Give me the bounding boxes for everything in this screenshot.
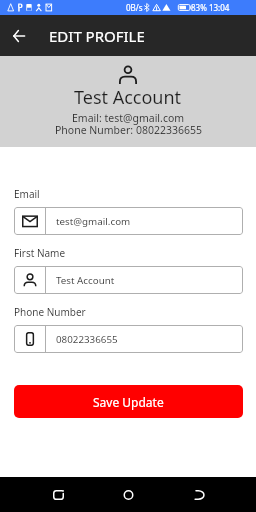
staticText: Save Update: [93, 394, 164, 410]
staticText: test@gmail.com: [56, 215, 131, 228]
staticText: 08022336655: [56, 333, 118, 346]
button[interactable]: Save Update: [14, 385, 243, 418]
button[interactable]: 08022336655: [14, 325, 243, 353]
button[interactable]: Recent apps: [35, 477, 81, 512]
button[interactable]: test@gmail.com: [14, 207, 243, 235]
staticText: Phone Number: [14, 305, 86, 319]
button[interactable]: Back: [8, 25, 29, 46]
staticText: 0B/s: [126, 2, 143, 13]
staticText: Test Account: [56, 274, 115, 287]
staticText: Test Account: [74, 85, 182, 110]
staticText: Phone Number: 08022336655: [55, 123, 202, 137]
button[interactable]: Test Account: [14, 266, 243, 294]
staticText: EDIT PROFILE: [49, 26, 145, 46]
staticText: 83% 13:04: [191, 2, 230, 13]
staticText: Email: [14, 187, 40, 201]
button[interactable]: Back: [176, 477, 222, 512]
button[interactable]: Home: [105, 477, 151, 512]
staticText: Email: test@gmail.com: [72, 111, 185, 125]
staticText: First Name: [14, 246, 66, 260]
